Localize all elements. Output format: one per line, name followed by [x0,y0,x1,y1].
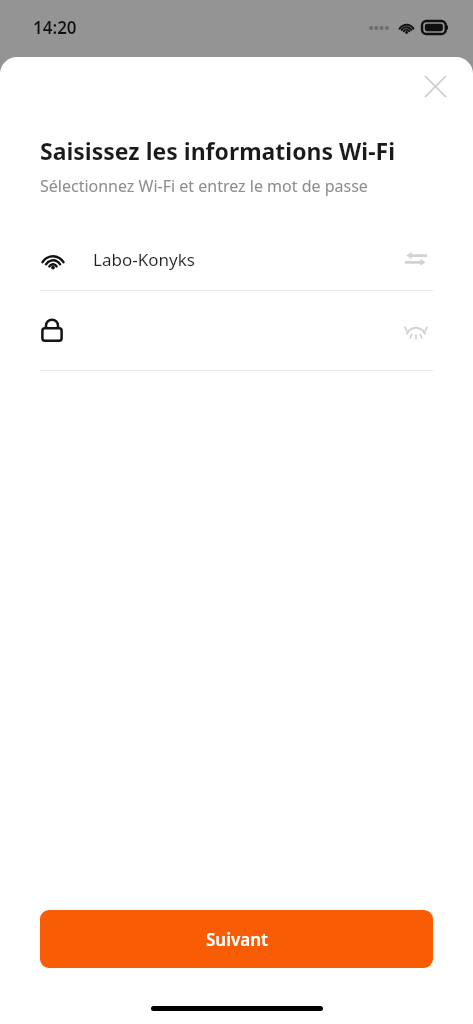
button[interactable]: Close [411,62,459,110]
button[interactable]: Show password [399,314,433,348]
staticText: Saisissez les informations Wi-Fi [40,135,396,166]
staticText: Sélectionnez Wi-Fi et entrez le mot de p… [40,175,368,197]
button[interactable]: Show password [40,291,433,370]
button[interactable]: Suivant [40,910,433,968]
staticText: Suivant [206,928,268,951]
staticText: Labo-Konyks [93,248,399,271]
button[interactable]: Labo-Konyks [40,228,433,290]
button[interactable]: Change Wi-Fi network [399,242,433,276]
staticText: 14:20 [33,16,77,39]
